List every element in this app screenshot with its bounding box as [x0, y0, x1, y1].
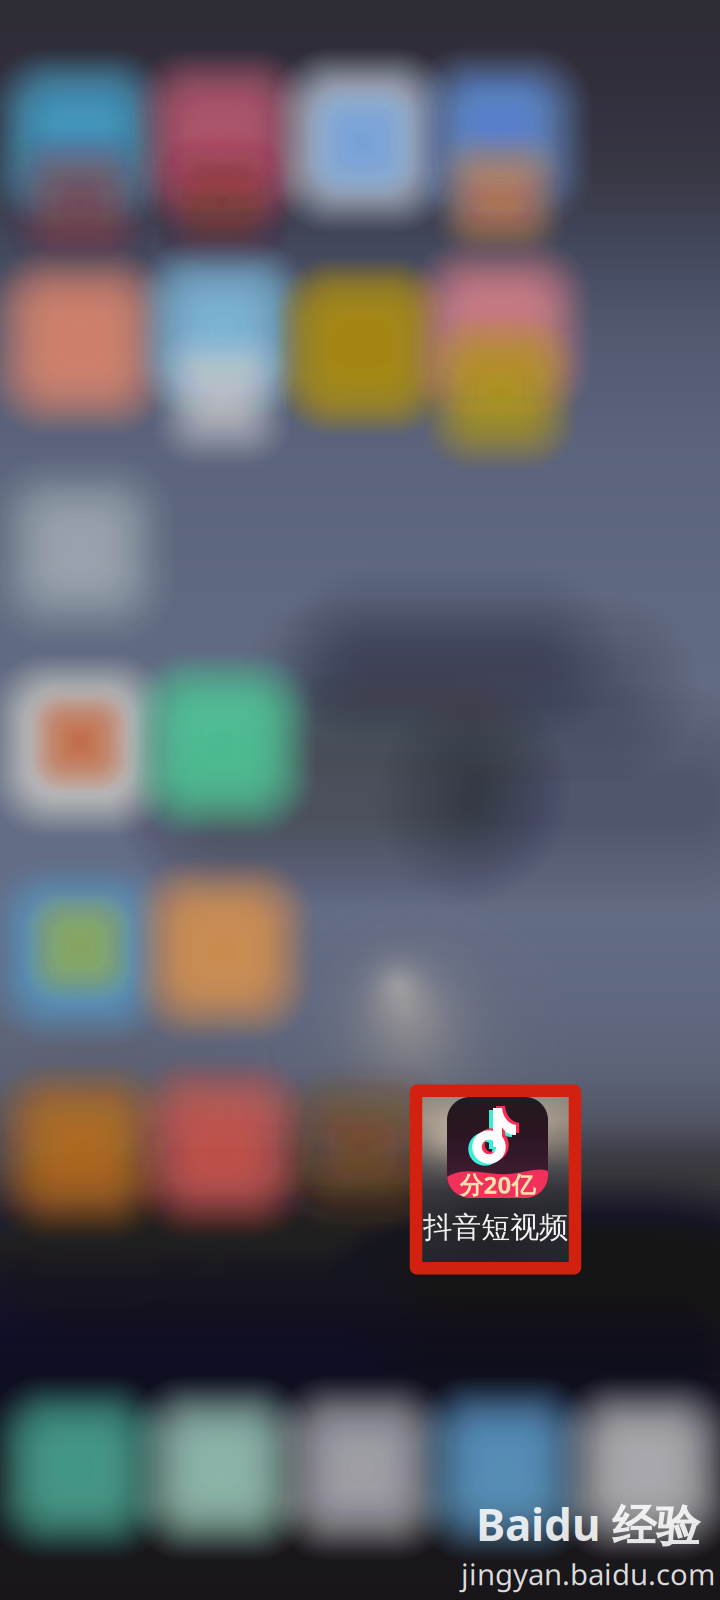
button[interactable]: 分20亿 [421, 1096, 569, 1262]
staticText: 分20亿 [459, 1169, 535, 1200]
staticText: jingyan.baidu.com [461, 1554, 715, 1593]
staticText: Baidu 经验 [476, 1495, 700, 1553]
staticText: 抖音短视频 [423, 1209, 568, 1245]
